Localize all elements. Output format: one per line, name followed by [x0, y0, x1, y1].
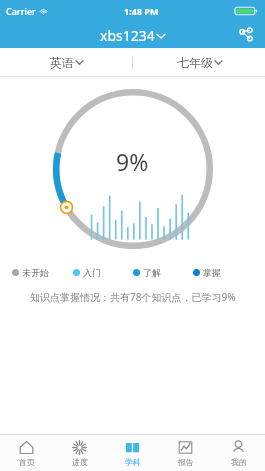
button[interactable]: Share [234, 23, 258, 47]
staticText: 进度 [72, 457, 88, 467]
staticText: 知识点掌握情况：共有78个知识点，已学习9% [30, 290, 236, 304]
button[interactable]: 报告 [159, 435, 212, 471]
staticText: 首页 [19, 457, 35, 467]
button[interactable]: xbs1234 [94, 24, 171, 47]
staticText: 英语 [50, 55, 74, 70]
staticText: 我的 [231, 457, 247, 467]
button[interactable]: 英语 [0, 48, 132, 77]
staticText: xbs1234 [100, 26, 155, 45]
button[interactable]: 进度 [53, 435, 106, 471]
staticText: 1:48 PM [124, 5, 159, 17]
staticText: 学科 [125, 457, 141, 467]
staticText: 9% [116, 146, 149, 177]
staticText: 报告 [178, 457, 194, 467]
button[interactable]: 首页 [0, 435, 53, 471]
button[interactable]: 学科 [106, 435, 159, 471]
staticText: 入门 [83, 267, 101, 278]
staticText: 未开始 [22, 267, 49, 278]
button[interactable]: 我的 [212, 435, 265, 471]
staticText: 七年级 [177, 55, 213, 70]
staticText: Carrier [6, 5, 36, 17]
staticText: 了解 [143, 267, 161, 278]
staticText: 掌握 [203, 267, 221, 278]
button[interactable]: 七年级 [133, 48, 265, 77]
